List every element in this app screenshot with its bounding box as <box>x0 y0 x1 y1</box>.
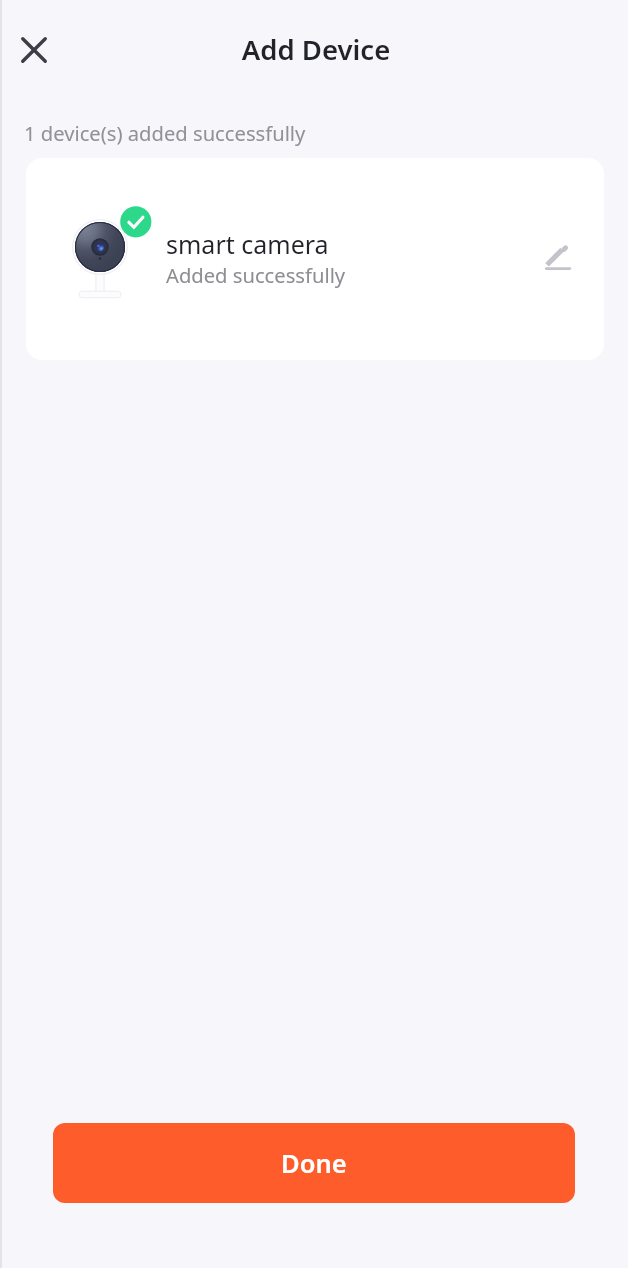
button[interactable]: Edit device name <box>536 234 582 280</box>
staticText: Add Device <box>2 31 628 68</box>
staticText: 1 device(s) added successfully <box>24 119 306 147</box>
button[interactable]: Close <box>10 26 58 74</box>
button[interactable]: smart camera <box>26 158 604 360</box>
staticText: smart camera <box>166 227 329 261</box>
staticText: Done <box>281 1146 347 1181</box>
staticText: Added successfully <box>166 261 346 289</box>
button[interactable]: Done <box>53 1123 575 1203</box>
